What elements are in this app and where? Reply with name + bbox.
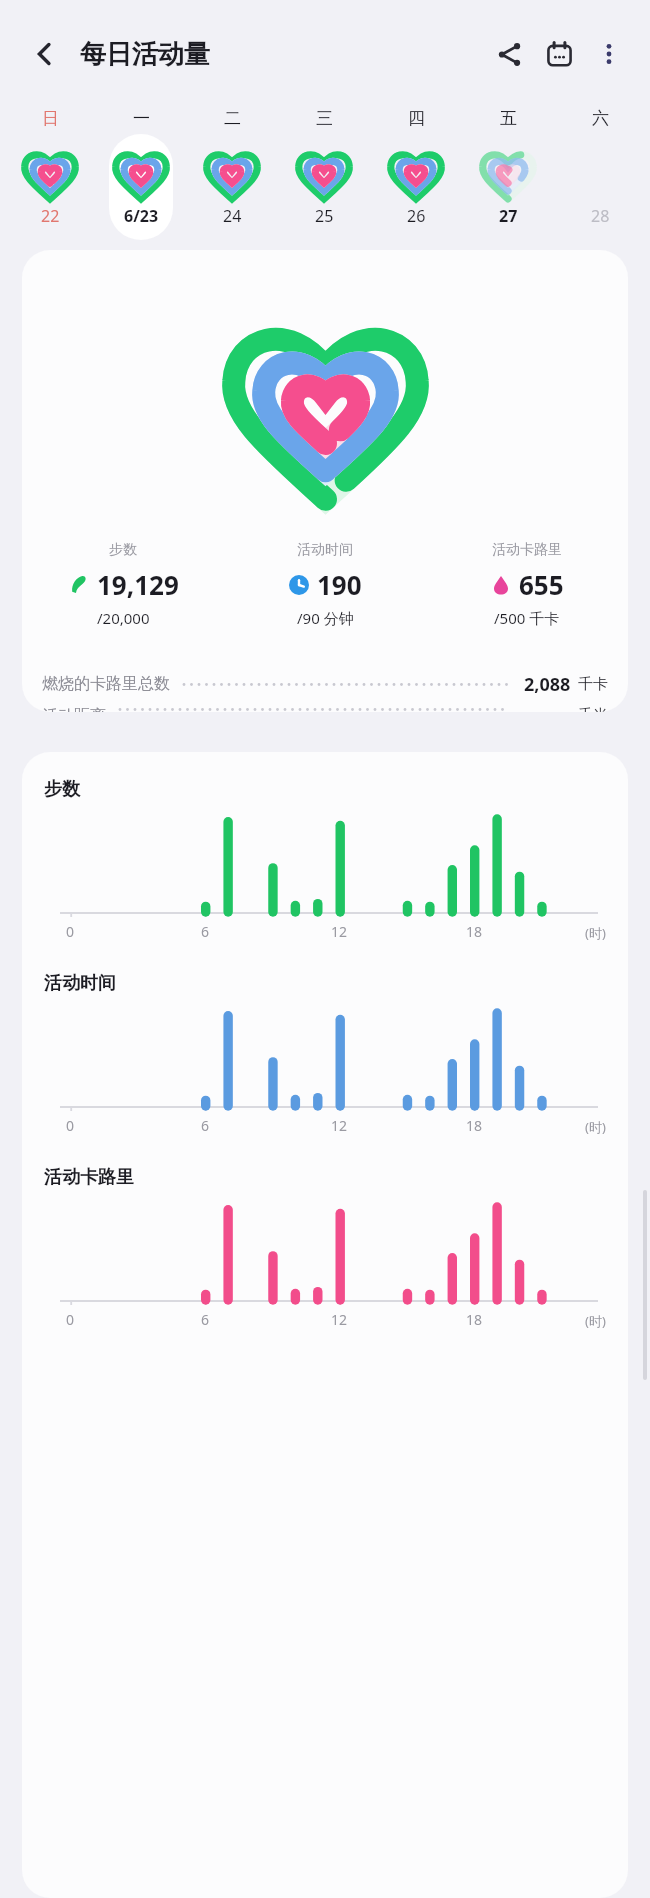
staticText: 190 bbox=[317, 567, 362, 602]
button[interactable]: 步数 bbox=[22, 541, 224, 628]
staticText: 26 bbox=[407, 205, 426, 227]
staticText: 19,129 bbox=[97, 567, 179, 602]
button[interactable]: 二 bbox=[186, 108, 278, 250]
staticText: 6/23 bbox=[124, 205, 159, 227]
staticText: 655 bbox=[519, 567, 564, 602]
staticText: 活动时间 bbox=[44, 972, 116, 995]
staticText: 12 bbox=[331, 922, 348, 941]
button[interactable]: 六 bbox=[554, 108, 646, 250]
staticText: (时) bbox=[585, 1118, 606, 1136]
staticText: /20,000 bbox=[97, 608, 150, 628]
button[interactable]: 活动距离 bbox=[42, 706, 608, 712]
staticText: 12 bbox=[331, 1116, 348, 1135]
staticText: 千卡 bbox=[578, 675, 608, 694]
staticText: 活动卡路里 bbox=[492, 541, 562, 559]
staticText: 日 bbox=[42, 108, 59, 129]
staticText: 12 bbox=[331, 1310, 348, 1329]
staticText: 0 bbox=[66, 1116, 75, 1135]
staticText: (时) bbox=[585, 1312, 606, 1330]
staticText: 2,088 bbox=[524, 672, 571, 697]
staticText: 18 bbox=[466, 1116, 483, 1135]
staticText: 步数 bbox=[44, 778, 80, 801]
staticText: 27 bbox=[499, 205, 518, 227]
staticText: 0 bbox=[66, 1310, 75, 1329]
staticText: 活动时间 bbox=[297, 541, 353, 559]
button[interactable]: 活动卡路里 bbox=[426, 541, 628, 628]
button[interactable]: Calendar bbox=[534, 29, 584, 79]
staticText: /90 分钟 bbox=[297, 608, 354, 628]
button[interactable]: Back bbox=[20, 29, 70, 79]
staticText: 一 bbox=[133, 108, 150, 129]
button[interactable]: 四 bbox=[370, 108, 462, 250]
staticText: /500 千卡 bbox=[494, 608, 560, 628]
staticText: 燃烧的卡路里总数 bbox=[42, 674, 170, 694]
button[interactable]: 五 bbox=[462, 108, 554, 250]
staticText: 6 bbox=[201, 1116, 210, 1135]
button[interactable]: 日 bbox=[4, 108, 95, 250]
staticText: 千米 bbox=[578, 706, 608, 712]
button[interactable]: More options bbox=[584, 29, 634, 79]
staticText: 18 bbox=[466, 922, 483, 941]
staticText: 活动距离 bbox=[42, 706, 106, 712]
staticText: 二 bbox=[224, 108, 241, 129]
button[interactable]: 步数 bbox=[22, 250, 628, 712]
staticText: 22 bbox=[41, 205, 60, 227]
staticText: 25 bbox=[315, 205, 334, 227]
staticText: 三 bbox=[316, 108, 333, 129]
staticText: 6 bbox=[201, 922, 210, 941]
staticText: 步数 bbox=[109, 541, 137, 559]
staticText: 24 bbox=[223, 205, 242, 227]
staticText: 活动卡路里 bbox=[44, 1166, 134, 1189]
staticText: 6 bbox=[201, 1310, 210, 1329]
staticText: 六 bbox=[592, 108, 609, 129]
staticText: 五 bbox=[500, 108, 517, 129]
button[interactable]: 燃烧的卡路里总数 bbox=[42, 662, 608, 706]
staticText: 0 bbox=[66, 922, 75, 941]
button[interactable]: Share bbox=[484, 29, 534, 79]
staticText: 每日活动量 bbox=[80, 38, 210, 71]
button[interactable]: 一 bbox=[95, 108, 186, 250]
staticText: (时) bbox=[585, 924, 606, 942]
staticText: 28 bbox=[591, 205, 610, 227]
staticText: 四 bbox=[408, 108, 425, 129]
button[interactable]: 三 bbox=[278, 108, 370, 250]
button[interactable]: 活动时间 bbox=[224, 541, 426, 628]
staticText: 18 bbox=[466, 1310, 483, 1329]
